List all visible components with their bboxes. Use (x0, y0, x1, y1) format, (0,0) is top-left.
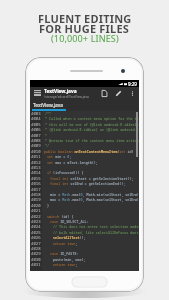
staticText: 4020 (31, 203, 41, 208)
staticText: 4019 (31, 197, 41, 202)
staticText: */ (45, 143, 50, 148)
staticText: 4028 (31, 246, 41, 251)
staticText: int max = mText.length(); (47, 160, 98, 165)
button[interactable]: Edit (111, 87, 125, 99)
staticText: paste(min, max); (53, 257, 86, 262)
staticText: public boolean onTextContextMenuItem(int… (44, 149, 138, 154)
staticText: 4018 (31, 192, 41, 197)
button[interactable]: Navigation menu (30, 87, 44, 99)
button[interactable]: Open file (97, 87, 111, 99)
staticText: TextView.java (44, 88, 77, 95)
staticText: 4004 (31, 116, 41, 121)
staticText: 4026 (31, 235, 41, 240)
staticText: final int selStart = getSelectionStart()… (50, 176, 134, 181)
staticText: 4029 (31, 251, 41, 256)
staticText: /** (45, 111, 52, 116)
staticText: 4003 (31, 111, 41, 116)
staticText: 4031 (31, 262, 41, 267)
staticText: 9:29 (128, 81, 137, 87)
staticText: case ID_PASTE: (50, 251, 79, 256)
staticText: 4027 (31, 241, 41, 246)
staticText: 4030 (31, 257, 41, 262)
staticText: FOR HUGE FILES (39, 21, 130, 36)
staticText: 4024 (31, 224, 41, 229)
staticText: 4008 (31, 138, 41, 143)
staticText: 4014 (31, 170, 41, 175)
staticText: * {@link android.R.id#cut} or {@link and… (45, 127, 139, 132)
staticText: return true; (53, 262, 78, 267)
staticText: int min = 0; (47, 154, 72, 159)
staticText: } (47, 203, 50, 208)
staticText: min = Math.max(0, Math.min(selStart, sel… (50, 192, 138, 197)
staticText: 4015 (31, 176, 41, 181)
staticText: * @return true if the context menu item … (45, 138, 139, 143)
staticText: 4005 (31, 122, 41, 127)
staticText: selectAllText(); (53, 235, 86, 240)
staticText: // This does not enter text selection mo… (53, 224, 139, 229)
staticText: 4007 (31, 133, 41, 138)
staticText: if (isFocused()) { (47, 170, 84, 175)
staticText: /storage/sdcard/TextView.java (44, 95, 89, 99)
staticText: 4013 (31, 165, 41, 170)
staticText: 4022 (31, 214, 41, 219)
staticText: return true; (53, 241, 78, 246)
staticText: 4006 (31, 127, 41, 132)
staticText: FLUENT EDITING (38, 11, 132, 26)
button[interactable]: More options (125, 87, 139, 99)
staticText: * Called when a context menu option for … (45, 116, 139, 121)
staticText: 4021 (31, 208, 41, 213)
staticText: 4016 (31, 181, 41, 186)
staticText: final int selEnd = getSelectionEnd(); (50, 181, 126, 186)
staticText: max = Math.max(0, Math.max(selStart, sel… (50, 197, 138, 202)
staticText: * (45, 133, 48, 138)
staticText: 4017 (31, 187, 41, 192)
staticText: switch (id) { (47, 214, 74, 219)
staticText: case ID_SELECT_ALL: (50, 219, 89, 224)
staticText: * this will be one of {@link android.R.i… (45, 122, 139, 127)
staticText: 4023 (31, 219, 41, 224)
staticText: 4012 (31, 160, 41, 165)
staticText: 4010 (31, 149, 41, 154)
staticText: TextView.java (33, 102, 63, 109)
staticText: 4009 (31, 143, 41, 148)
staticText: (10,000+ LINES) (51, 32, 119, 44)
staticText: 4025 (31, 230, 41, 235)
staticText: 4011 (31, 154, 41, 159)
staticText: // bulk edited, like selectAllOnFocus do… (53, 230, 139, 235)
